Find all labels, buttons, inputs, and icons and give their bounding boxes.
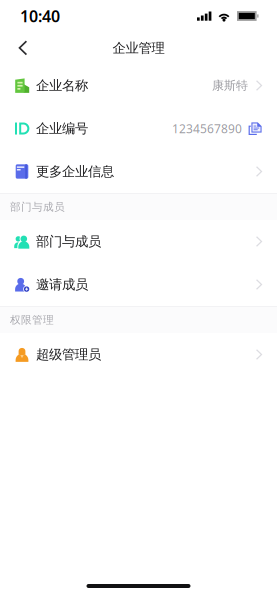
- staticText: 10:40: [20, 5, 60, 27]
- button[interactable]: 企业名称: [0, 64, 277, 107]
- staticText: 更多企业信息: [36, 163, 114, 180]
- staticText: 企业管理: [112, 40, 164, 56]
- staticText: 权限管理: [10, 313, 54, 326]
- button[interactable]: 更多企业信息: [0, 150, 277, 193]
- staticText: 部门与成员: [10, 200, 65, 213]
- button[interactable]: Back: [0, 32, 38, 64]
- button[interactable]: 邀请成员: [0, 263, 277, 306]
- staticText: 企业编号: [36, 120, 88, 137]
- staticText: 部门与成员: [36, 233, 101, 250]
- button[interactable]: 超级管理员: [0, 333, 277, 376]
- staticText: 康斯特: [212, 78, 248, 93]
- staticText: 邀请成员: [36, 276, 88, 293]
- staticText: 企业名称: [36, 77, 88, 94]
- staticText: 1234567890: [172, 120, 242, 136]
- button[interactable]: 部门与成员: [0, 220, 277, 263]
- button[interactable]: 企业编号: [0, 107, 277, 150]
- staticText: 超级管理员: [36, 346, 101, 363]
